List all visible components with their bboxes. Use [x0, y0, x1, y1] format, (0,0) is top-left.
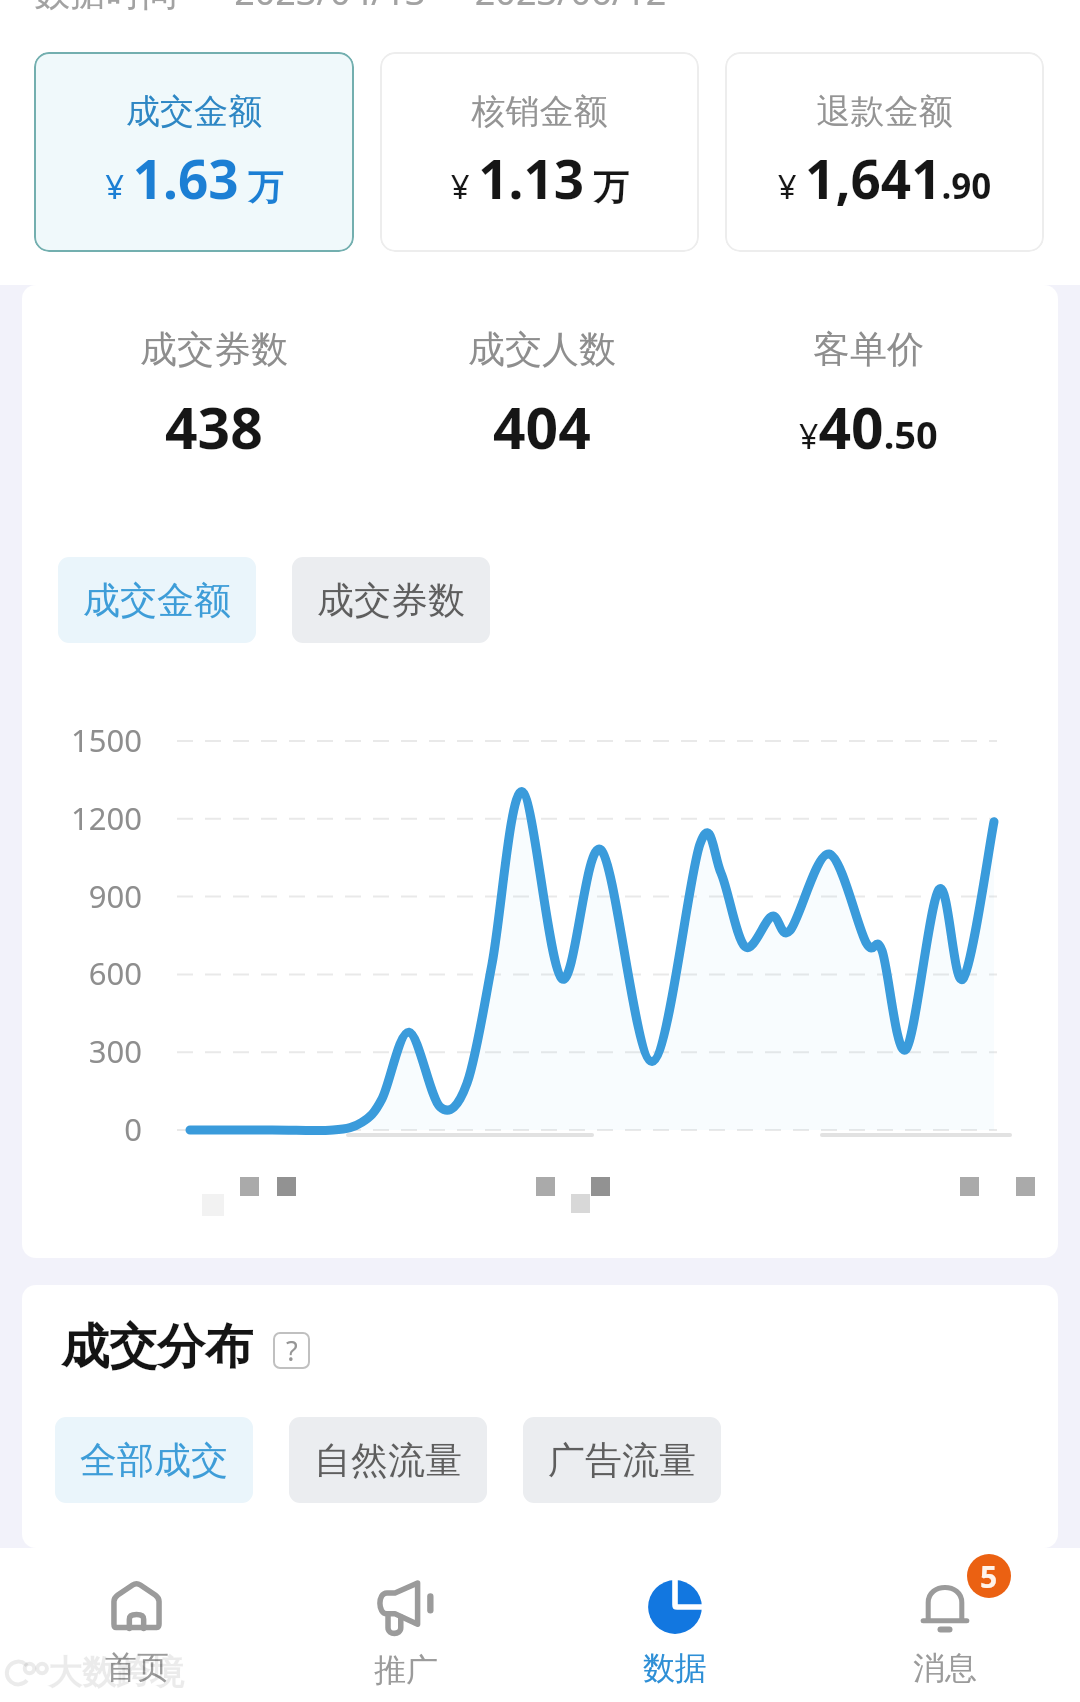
other: Home	[109, 1579, 164, 1634]
button[interactable]: 成交金额	[58, 557, 256, 643]
staticText: 消息	[913, 1648, 977, 1688]
staticText: 推广	[374, 1650, 438, 1690]
button[interactable]: 退款金额	[725, 52, 1044, 252]
staticText: 成交券数	[317, 577, 465, 624]
staticText: 首页	[105, 1647, 169, 1687]
staticText: ¥ 1.63 万	[34, 142, 354, 214]
staticText: 5	[980, 1556, 998, 1597]
staticText: 数据时间 2023/04/13 - 2023/06/12	[34, 0, 667, 16]
staticText: 成交人数	[468, 326, 616, 373]
button[interactable]: 成交金额	[34, 52, 354, 252]
staticText: 成交金额	[34, 90, 354, 133]
staticText: 900	[22, 875, 142, 917]
staticText: 退款金额	[725, 90, 1044, 133]
staticText: 0	[22, 1108, 142, 1150]
button[interactable]: Data	[540, 1548, 810, 1702]
button[interactable]: 全部成交	[55, 1417, 253, 1503]
staticText: 成交券数	[140, 326, 288, 373]
staticText: 数据	[643, 1648, 707, 1688]
staticText: 全部成交	[80, 1437, 228, 1484]
button[interactable]: Home	[2, 1548, 271, 1702]
button[interactable]: 核销金额	[380, 52, 699, 252]
staticText: ?	[286, 1332, 298, 1369]
staticText: 成交分布	[61, 1317, 253, 1377]
staticText: ¥ 1.13 万	[380, 142, 699, 214]
staticText: 438	[165, 388, 263, 466]
staticText: 1200	[22, 797, 142, 839]
staticText: 1500	[22, 719, 142, 761]
other: Data	[647, 1579, 703, 1635]
staticText: 自然流量	[314, 1437, 462, 1484]
staticText: ¥40.50	[799, 388, 938, 466]
staticText: 300	[22, 1030, 142, 1072]
button[interactable]: Messages	[810, 1548, 1080, 1702]
staticText: 核销金额	[380, 90, 699, 133]
other: Promotion	[377, 1579, 435, 1637]
button[interactable]: 广告流量	[523, 1417, 721, 1503]
staticText: 客单价	[813, 326, 924, 373]
staticText: 成交金额	[83, 577, 231, 624]
staticText: ¥ 1,641.90	[725, 142, 1044, 214]
other: Messages	[917, 1579, 973, 1635]
button[interactable]: 成交券数	[292, 557, 490, 643]
staticText: 广告流量	[548, 1437, 696, 1484]
staticText: 404	[493, 388, 591, 466]
button[interactable]: Promotion	[271, 1548, 540, 1702]
button[interactable]: Help	[273, 1332, 310, 1369]
button[interactable]: 5 unread	[967, 1554, 1011, 1598]
staticText: 600	[22, 952, 142, 994]
button[interactable]: 自然流量	[289, 1417, 487, 1503]
staticText: 大数跨境	[48, 1651, 184, 1694]
